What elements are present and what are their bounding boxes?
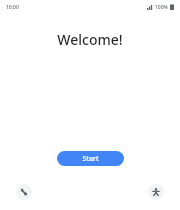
button[interactable]: Start — [57, 151, 124, 166]
staticText: 100% — [155, 4, 168, 11]
button[interactable]: Call — [16, 184, 32, 200]
staticText: 10:00 — [6, 4, 19, 11]
staticText: Start — [82, 154, 99, 164]
staticText: Welcome! — [57, 30, 123, 49]
button[interactable]: Accessibility — [148, 184, 164, 200]
